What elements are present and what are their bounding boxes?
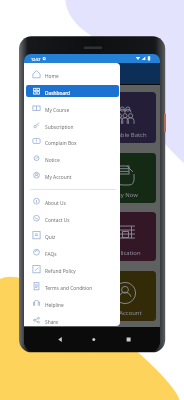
button[interactable]: Share (26, 314, 119, 326)
button[interactable]: Notice (26, 152, 119, 164)
button[interactable]: Available Batch (94, 92, 156, 143)
button[interactable]: Refund Policy (26, 263, 119, 275)
staticText: Quiz (45, 234, 56, 241)
staticText: My Course (45, 107, 70, 114)
button[interactable]: About Us (26, 195, 119, 207)
button[interactable]: My Account (94, 271, 156, 321)
staticText: My Account (109, 309, 142, 317)
staticText: FAQs (45, 251, 57, 258)
button[interactable]: Quiz (26, 229, 119, 241)
button[interactable]: Subscription (26, 119, 119, 131)
staticText: Available Batch (104, 131, 147, 139)
staticText: Home (45, 73, 59, 80)
staticText: Complain Box (45, 140, 77, 147)
staticText: Helpline (45, 302, 64, 309)
button[interactable]: Terms and Condition (26, 280, 119, 292)
staticText: Share (45, 319, 59, 326)
staticText: Refund Policy (45, 268, 76, 275)
button[interactable]: Contact Us (26, 212, 119, 224)
staticText: Buy Now (113, 191, 138, 199)
staticText: Notice (45, 157, 60, 164)
staticText: Dashboard (45, 90, 71, 97)
button[interactable]: Application (94, 212, 156, 261)
button[interactable]: Buy Now (94, 153, 156, 203)
button[interactable]: Home (26, 68, 119, 80)
button[interactable]: My Course (26, 102, 119, 114)
staticText: Subscription (45, 124, 74, 131)
button[interactable]: FAQs (26, 246, 119, 258)
staticText: Terms and Condition (45, 285, 93, 292)
staticText: 12:57 (31, 57, 41, 62)
staticText: Application (109, 249, 141, 257)
staticText: My Account (45, 174, 72, 181)
staticText: Contact Us (45, 217, 70, 224)
button[interactable]: Complain Box (26, 135, 119, 147)
button[interactable]: Helpline (26, 297, 119, 309)
button[interactable]: Dashboard (26, 85, 119, 97)
button[interactable]: My Account (26, 169, 119, 181)
staticText: About Us (45, 200, 66, 207)
